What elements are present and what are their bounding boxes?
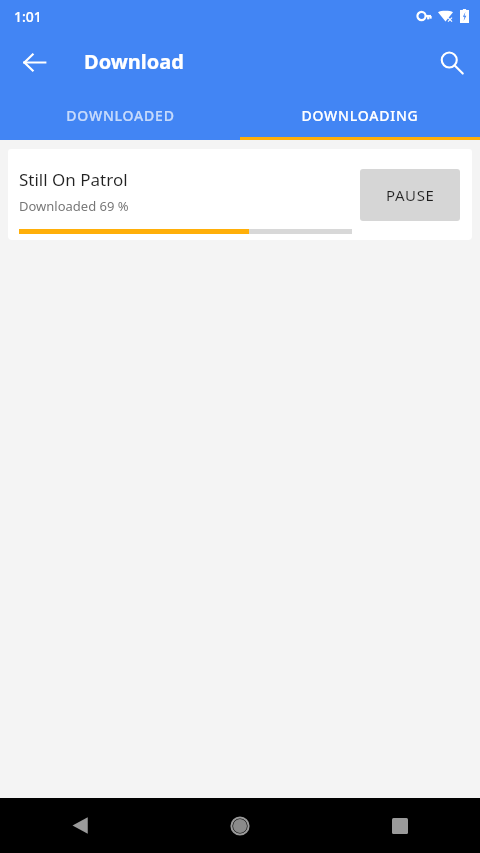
button[interactable]: Back: [10, 38, 58, 86]
button[interactable]: DOWNLOADING: [240, 91, 480, 140]
button[interactable]: Recent apps: [320, 798, 480, 853]
staticText: Downloaded 69 %: [19, 197, 129, 215]
button[interactable]: PAUSE: [360, 169, 460, 221]
button[interactable]: Search: [427, 38, 475, 86]
staticText: Still On Patrol: [19, 168, 128, 191]
staticText: DOWNLOADED: [66, 106, 175, 125]
staticText: DOWNLOADING: [301, 106, 419, 125]
staticText: 1:01: [14, 7, 42, 26]
button[interactable]: Still On Patrol: [8, 149, 472, 240]
button[interactable]: DOWNLOADED: [0, 91, 240, 140]
staticText: PAUSE: [386, 185, 435, 205]
button[interactable]: Back: [0, 798, 160, 853]
staticText: Download: [84, 48, 184, 75]
button[interactable]: Home: [160, 798, 320, 853]
